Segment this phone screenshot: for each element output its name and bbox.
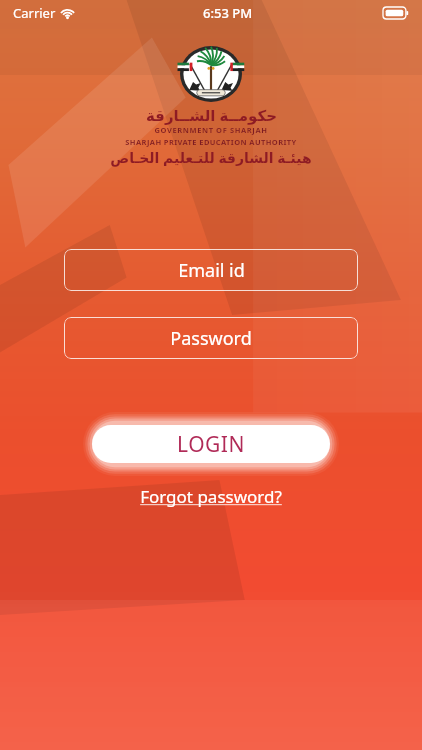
staticText: هيئـة الشارقة للتـعليم الخـاص bbox=[110, 148, 312, 167]
staticText: GOVERNMENT OF SHARJAH bbox=[154, 125, 268, 135]
staticText: Forgot password? bbox=[140, 485, 282, 508]
staticText: SHARJAH PRIVATE EDUCATION AUTHORITY bbox=[125, 137, 297, 147]
button[interactable]: LOGIN bbox=[92, 425, 330, 463]
staticText: LOGIN bbox=[177, 430, 245, 459]
staticText: حكومــة الشــارقة bbox=[146, 105, 277, 125]
staticText: Carrier bbox=[13, 4, 56, 22]
button[interactable]: Email id bbox=[64, 249, 358, 291]
staticText: Password bbox=[170, 326, 252, 351]
staticText: Email id bbox=[178, 258, 245, 283]
button[interactable]: Password bbox=[64, 317, 358, 359]
staticText: 6:53 PM bbox=[203, 4, 253, 22]
button[interactable]: Forgot password? bbox=[134, 483, 288, 510]
